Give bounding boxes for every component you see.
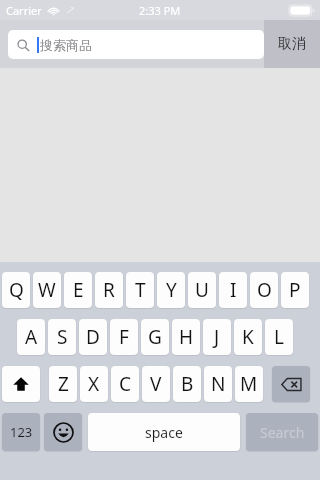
button[interactable]: P xyxy=(281,272,309,308)
button[interactable]: A xyxy=(17,319,45,355)
staticText: U xyxy=(195,277,209,303)
staticText: 2:33 PM xyxy=(139,3,181,18)
button[interactable]: U xyxy=(188,272,216,308)
staticText: R xyxy=(103,277,115,303)
button[interactable]: Emoji keyboard xyxy=(44,413,82,451)
staticText: Y xyxy=(166,277,177,303)
staticText: X xyxy=(88,371,100,397)
button[interactable]: N xyxy=(204,366,232,402)
button[interactable]: Z xyxy=(49,366,77,402)
staticText: S xyxy=(57,324,68,350)
button[interactable]: D xyxy=(79,319,107,355)
button[interactable]: I xyxy=(219,272,247,308)
button[interactable]: B xyxy=(173,366,201,402)
staticText: Search xyxy=(260,423,305,442)
staticText: 搜索商品 xyxy=(40,37,92,53)
button[interactable]: R xyxy=(95,272,123,308)
button[interactable]: Search xyxy=(246,413,318,451)
button[interactable]: F xyxy=(110,319,138,355)
staticText: G xyxy=(148,324,162,350)
button[interactable]: Backspace xyxy=(272,366,310,402)
staticText: M xyxy=(240,371,258,397)
staticText: J xyxy=(214,324,220,350)
staticText: K xyxy=(242,324,254,350)
button[interactable]: space xyxy=(88,413,240,451)
button[interactable]: X xyxy=(80,366,108,402)
staticText: B xyxy=(181,371,194,397)
button[interactable]: H xyxy=(172,319,200,355)
button[interactable]: C xyxy=(111,366,139,402)
button[interactable]: Shift xyxy=(2,366,40,402)
button[interactable]: Q xyxy=(2,272,30,308)
staticText: Z xyxy=(58,371,69,397)
staticText: 123 xyxy=(10,423,33,441)
staticText: P xyxy=(289,277,301,303)
button[interactable]: J xyxy=(203,319,231,355)
button[interactable]: M xyxy=(235,366,263,402)
staticText: A xyxy=(25,324,38,350)
staticText: 取消 xyxy=(278,35,306,53)
button[interactable]: 搜索商品 xyxy=(8,30,264,59)
button[interactable]: S xyxy=(48,319,76,355)
button[interactable]: O xyxy=(250,272,278,308)
staticText: F xyxy=(119,324,129,350)
staticText: T xyxy=(135,277,146,303)
button[interactable]: E xyxy=(64,272,92,308)
staticText: space xyxy=(145,423,183,442)
staticText: C xyxy=(119,371,132,397)
staticText: O xyxy=(257,277,272,303)
staticText: L xyxy=(274,324,284,350)
staticText: Carrier xyxy=(6,3,42,18)
staticText: H xyxy=(179,324,194,350)
button[interactable]: 123 xyxy=(2,413,40,451)
staticText: I xyxy=(230,277,237,303)
button[interactable]: 取消 xyxy=(264,20,320,68)
button[interactable]: K xyxy=(234,319,262,355)
button[interactable]: Y xyxy=(157,272,185,308)
button[interactable]: L xyxy=(265,319,293,355)
staticText: N xyxy=(211,371,226,397)
staticText: D xyxy=(86,324,100,350)
staticText: W xyxy=(38,277,56,303)
button[interactable]: W xyxy=(33,272,61,308)
staticText: E xyxy=(73,277,84,303)
staticText: V xyxy=(150,371,162,397)
staticText: Q xyxy=(9,277,24,303)
button[interactable]: T xyxy=(126,272,154,308)
button[interactable]: V xyxy=(142,366,170,402)
button[interactable]: G xyxy=(141,319,169,355)
